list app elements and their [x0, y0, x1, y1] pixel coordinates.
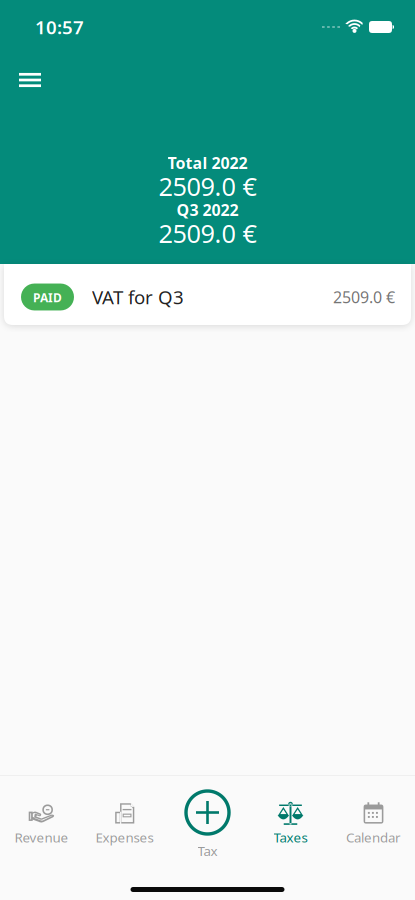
staticText: Tax [197, 842, 217, 860]
staticText: Taxes [273, 828, 307, 846]
button[interactable]: Taxes [249, 789, 332, 846]
button[interactable]: Tax [166, 776, 249, 860]
staticText: Calendar [346, 828, 401, 846]
staticText: VAT for Q3 [92, 285, 184, 309]
button[interactable]: PAID [4, 264, 411, 325]
staticText: 2509.0 € [158, 216, 256, 250]
button[interactable]: Expenses [83, 789, 166, 846]
staticText: Q3 2022 [176, 199, 238, 220]
staticText: PAID [33, 289, 62, 305]
staticText: Expenses [95, 828, 153, 846]
staticText: 10:57 [35, 15, 84, 39]
staticText: 2509.0 € [333, 286, 395, 308]
button[interactable]: Calendar [332, 789, 415, 846]
staticText: Revenue [14, 828, 68, 846]
button[interactable]: Menu [7, 54, 53, 100]
staticText: 2509.0 € [158, 169, 256, 203]
staticText: Total 2022 [167, 152, 247, 173]
button[interactable]: Revenue [0, 789, 83, 846]
